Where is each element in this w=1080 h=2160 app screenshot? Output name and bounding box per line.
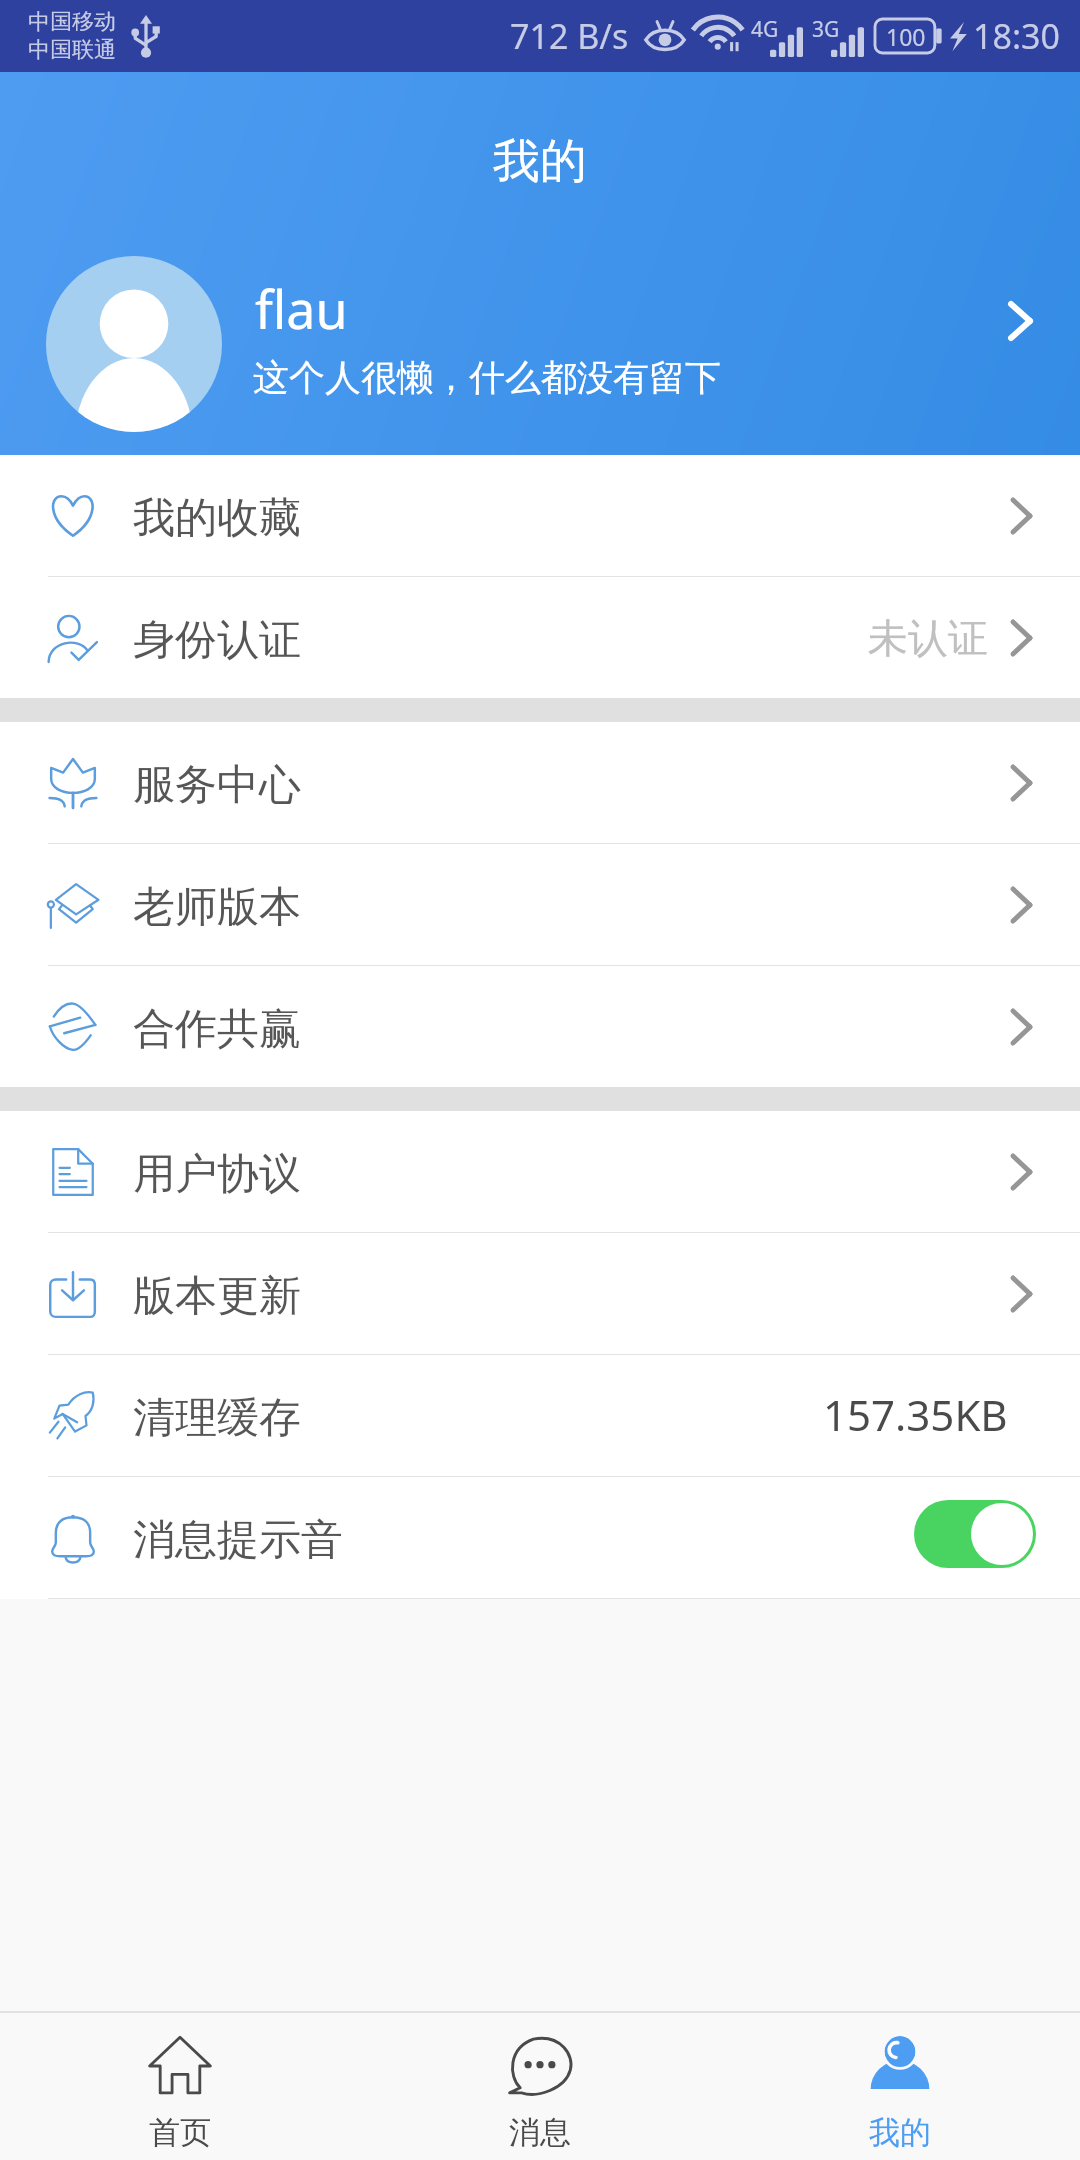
button[interactable]: 合作共赢 <box>0 966 1080 1087</box>
staticText: 首页 <box>149 2113 211 2152</box>
button[interactable]: 服务中心 <box>0 722 1080 843</box>
staticText: 我的收藏 <box>133 492 301 545</box>
button[interactable]: flau <box>0 72 1080 455</box>
staticText: 18:30 <box>973 13 1060 59</box>
staticText: 清理缓存 <box>133 1392 301 1445</box>
staticText: 4G <box>751 15 779 44</box>
button[interactable]: 首页 <box>0 2013 360 2160</box>
staticText: 用户协议 <box>133 1148 301 1201</box>
staticText: 服务中心 <box>133 759 301 812</box>
button[interactable]: 老师版本 <box>0 844 1080 965</box>
button[interactable]: 消息 <box>360 2013 720 2160</box>
staticText: 100 <box>886 21 926 52</box>
staticText: 我的 <box>493 132 587 191</box>
staticText: 157.35KB <box>823 1386 1008 1443</box>
staticText: 老师版本 <box>133 881 301 934</box>
staticText: 中国联通 <box>28 36 116 64</box>
button[interactable]: 消息提示音开关 <box>914 1500 1036 1568</box>
button[interactable]: 清理缓存 <box>0 1355 1080 1476</box>
staticText: flau <box>255 273 348 344</box>
staticText: 712 B/s <box>510 13 629 59</box>
staticText: 中国移动 <box>28 8 116 36</box>
staticText: 身份认证 <box>133 614 301 667</box>
staticText: 合作共赢 <box>133 1003 301 1056</box>
button[interactable]: 消息提示音 <box>0 1477 1080 1598</box>
staticText: 这个人很懒，什么都没有留下 <box>253 355 721 400</box>
button[interactable]: 版本更新 <box>0 1233 1080 1354</box>
staticText: 未认证 <box>868 613 988 663</box>
button[interactable]: 用户协议 <box>0 1111 1080 1232</box>
staticText: 3G <box>812 15 840 44</box>
staticText: 我的 <box>869 2113 931 2152</box>
staticText: 消息 <box>509 2113 571 2152</box>
staticText: 消息提示音 <box>133 1514 343 1567</box>
button[interactable]: 我的 <box>720 2013 1080 2160</box>
staticText: 版本更新 <box>133 1270 301 1323</box>
button[interactable]: 身份认证 <box>0 577 1080 698</box>
button[interactable]: 我的收藏 <box>0 455 1080 576</box>
